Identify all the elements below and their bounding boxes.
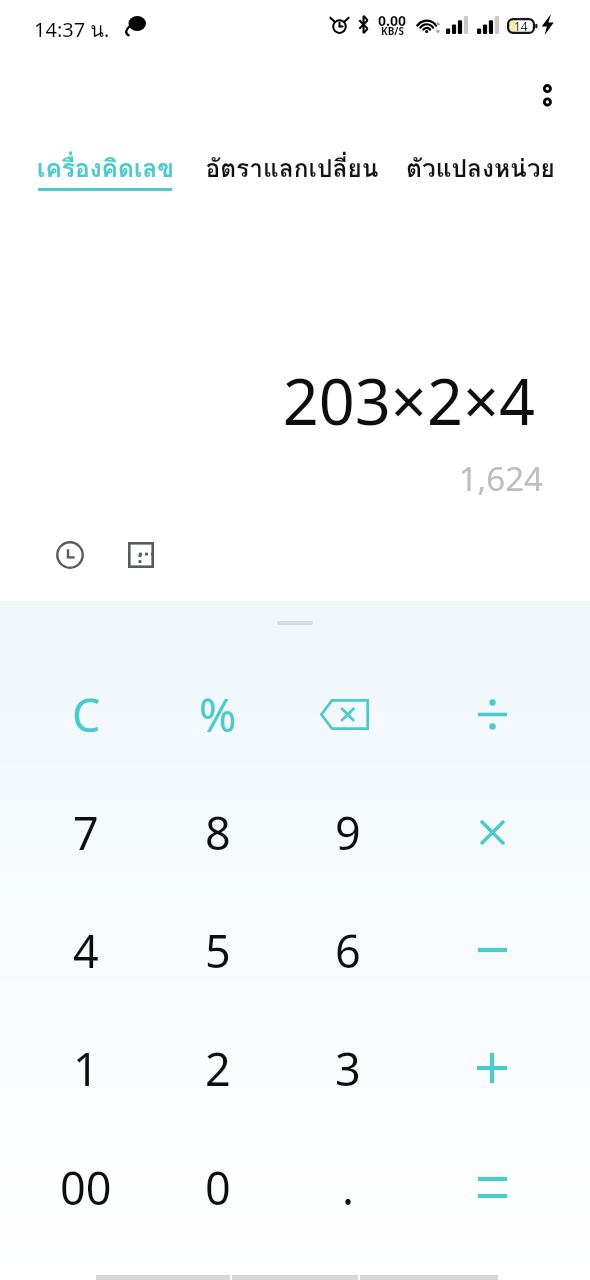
staticText: .	[342, 1157, 355, 1218]
button[interactable]: 3	[282, 1009, 414, 1127]
staticText: 3	[335, 1038, 361, 1099]
button[interactable]: History	[48, 533, 92, 577]
staticText: 5	[205, 920, 231, 981]
button[interactable]: Add	[426, 1009, 558, 1127]
button[interactable]: Backspace	[282, 655, 414, 773]
staticText: 203×2×4	[0, 358, 535, 444]
button[interactable]: 0	[152, 1128, 284, 1246]
button[interactable]: เครื่องคิดเลข	[14, 126, 196, 196]
button[interactable]: Multiply	[426, 773, 558, 891]
staticText: 8	[205, 802, 231, 863]
button[interactable]: 6	[282, 891, 414, 1009]
staticText: 1	[73, 1038, 99, 1099]
staticText: 1,624	[0, 456, 543, 501]
button[interactable]: อัตราแลกเปลี่ยน	[201, 126, 383, 188]
staticText: KB/S	[381, 24, 404, 38]
staticText: 14:37 น.	[34, 14, 110, 46]
button[interactable]: C	[20, 655, 152, 773]
other: Multiply	[481, 821, 504, 844]
button[interactable]: Scientific mode	[119, 533, 163, 577]
button[interactable]: .	[282, 1128, 414, 1246]
staticText: 0	[205, 1157, 231, 1218]
other: Divide	[478, 701, 507, 728]
button[interactable]: 5	[152, 891, 284, 1009]
button[interactable]: 1	[20, 1009, 152, 1127]
button[interactable]: %	[152, 655, 284, 773]
other: Add	[477, 1053, 507, 1083]
button[interactable]: 9	[282, 773, 414, 891]
other: Equals	[478, 1177, 507, 1198]
button[interactable]: More options	[522, 69, 570, 117]
staticText: เครื่องคิดเลข	[37, 149, 174, 188]
button[interactable]: Divide	[426, 655, 558, 773]
staticText: 0.00	[378, 11, 406, 30]
staticText: 6	[335, 920, 361, 981]
other: Subtract	[478, 947, 507, 953]
button[interactable]: Equals	[426, 1128, 558, 1246]
staticText: 9	[335, 802, 361, 863]
staticText: 2	[205, 1038, 231, 1099]
staticText: 14	[514, 18, 528, 34]
staticText: ตัวแปลงหน่วย	[406, 149, 555, 188]
staticText: %	[199, 684, 237, 745]
staticText: C	[72, 684, 101, 745]
button[interactable]: 7	[20, 773, 152, 891]
button[interactable]: ตัวแปลงหน่วย	[389, 126, 571, 188]
other: Backspace	[320, 699, 369, 730]
button[interactable]: 00	[20, 1128, 152, 1246]
staticText: อัตราแลกเปลี่ยน	[205, 149, 379, 188]
staticText: 00	[60, 1157, 112, 1218]
staticText: 7	[73, 802, 99, 863]
button[interactable]: 8	[152, 773, 284, 891]
button[interactable]: 4	[20, 891, 152, 1009]
button[interactable]: 2	[152, 1009, 284, 1127]
button[interactable]: Subtract	[426, 891, 558, 1009]
staticText: 4	[73, 920, 99, 981]
